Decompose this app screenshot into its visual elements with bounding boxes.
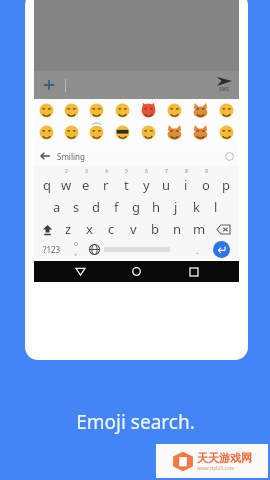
staticText: 6: [145, 168, 148, 175]
staticText: u: [162, 176, 171, 194]
button[interactable]: o: [196, 175, 216, 195]
button[interactable]: j: [166, 195, 186, 218]
button[interactable]: l: [206, 195, 226, 218]
button[interactable]: Shift: [37, 218, 58, 240]
staticText: 3: [85, 168, 88, 175]
staticText: ?123: [43, 244, 61, 255]
button[interactable]: z: [58, 218, 79, 240]
button[interactable]: Send SMS: [215, 75, 234, 95]
staticText: 2: [65, 168, 68, 175]
staticText: 5: [125, 168, 128, 175]
staticText: www.ttyl23.com: [197, 465, 235, 472]
staticText: e: [82, 176, 90, 194]
staticText: d: [92, 198, 100, 216]
staticText: k: [193, 198, 200, 216]
button[interactable]: Backspace: [210, 218, 236, 240]
button[interactable]: v: [122, 218, 144, 240]
staticText: 7: [165, 168, 168, 175]
button[interactable]: y: [136, 175, 156, 195]
button[interactable]: Space: [104, 247, 189, 252]
button[interactable]: d: [86, 195, 106, 218]
staticText: m: [193, 220, 206, 238]
button[interactable]: x: [79, 218, 100, 240]
button[interactable]: s: [66, 195, 86, 218]
other: Back: [39, 150, 51, 162]
staticText: w: [61, 176, 72, 194]
staticText: 8: [185, 168, 188, 175]
staticText: y: [143, 176, 150, 194]
staticText: c: [108, 220, 115, 238]
staticText: l: [214, 198, 218, 216]
staticText: g: [132, 198, 140, 216]
button[interactable]: Enter: [213, 241, 230, 258]
staticText: j: [174, 198, 178, 216]
button[interactable]: Home: [126, 261, 147, 282]
staticText: b: [151, 220, 159, 238]
button[interactable]: Change language: [85, 240, 104, 259]
button[interactable]: Back: [70, 261, 91, 282]
button[interactable]: q: [37, 175, 56, 195]
button[interactable]: g: [126, 195, 146, 218]
staticText: SMS: [219, 86, 230, 93]
button[interactable]: h: [146, 195, 166, 218]
button[interactable]: e: [76, 175, 96, 195]
staticText: s: [73, 198, 80, 216]
staticText: n: [173, 220, 182, 238]
staticText: 9: [205, 168, 208, 175]
button[interactable]: t: [116, 175, 136, 195]
button[interactable]: i: [176, 175, 196, 195]
button[interactable]: p: [216, 175, 236, 195]
button[interactable]: b: [144, 218, 166, 240]
staticText: v: [130, 220, 137, 238]
staticText: i: [184, 176, 188, 194]
staticText: 天天游戏网: [197, 451, 252, 465]
staticText: f: [114, 198, 119, 216]
staticText: r: [103, 176, 109, 194]
staticText: x: [86, 220, 93, 238]
button[interactable]: c: [100, 218, 122, 240]
button[interactable]: Recents: [183, 261, 204, 282]
button[interactable]: f: [106, 195, 126, 218]
button[interactable]: Comma: [66, 240, 85, 259]
staticText: Emoji search.: [76, 409, 195, 435]
other: Emoji: [225, 152, 234, 161]
button[interactable]: ?123: [37, 240, 66, 259]
staticText: t: [124, 176, 129, 194]
button[interactable]: u: [156, 175, 176, 195]
button[interactable]: Add attachment: [39, 75, 59, 95]
button[interactable]: r: [96, 175, 116, 195]
staticText: h: [152, 198, 161, 216]
button[interactable]: n: [166, 218, 188, 240]
staticText: 4: [105, 168, 108, 175]
staticText: a: [53, 198, 61, 216]
staticText: q: [43, 176, 51, 194]
button[interactable]: w: [56, 175, 76, 195]
staticText: Smiling: [57, 151, 85, 162]
button[interactable]: a: [47, 195, 66, 218]
button[interactable]: m: [188, 218, 210, 240]
staticText: o: [202, 176, 210, 194]
button[interactable]: Back: [34, 146, 239, 166]
staticText: .: [196, 244, 199, 256]
staticText: ,: [75, 246, 78, 257]
staticText: p: [222, 176, 230, 194]
button[interactable]: k: [186, 195, 206, 218]
button[interactable]: .: [189, 240, 206, 259]
staticText: z: [65, 220, 72, 238]
